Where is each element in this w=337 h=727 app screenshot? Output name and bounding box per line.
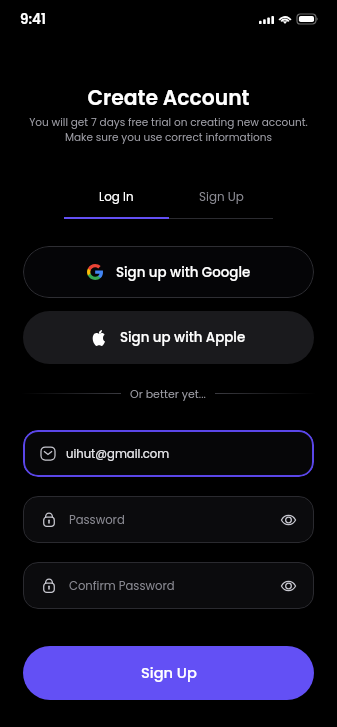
button[interactable]: Show password [281, 579, 296, 593]
staticText: Confirm Password [69, 578, 281, 594]
staticText: Or better yet... [130, 386, 206, 401]
button[interactable]: Sign up with Apple [23, 311, 314, 364]
staticText: Log In [99, 189, 134, 206]
button[interactable]: Password [23, 496, 314, 543]
button[interactable]: Sign Up [169, 189, 273, 219]
staticText: Password [69, 512, 281, 528]
button[interactable]: uihut@gmail.com [23, 430, 314, 477]
staticText: 9:41 [20, 10, 46, 29]
staticText: Sign up with Apple [120, 328, 246, 347]
staticText: Sign Up [141, 663, 197, 683]
button[interactable]: Confirm Password [23, 562, 314, 609]
button[interactable]: Show password [281, 513, 296, 527]
staticText: uihut@gmail.com [66, 446, 170, 462]
button[interactable]: Sign Up [23, 646, 314, 700]
staticText: You will get 7 days free trial on creati… [18, 115, 319, 145]
staticText: Sign up with Google [116, 263, 251, 282]
staticText: Create Account [0, 84, 337, 112]
button[interactable]: Log In [64, 189, 169, 219]
button[interactable]: Sign up with Google [23, 246, 314, 298]
staticText: Sign Up [199, 189, 244, 206]
